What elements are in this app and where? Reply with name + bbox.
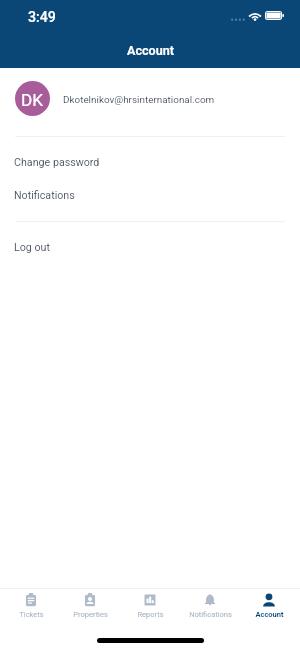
- staticText: Change password: [14, 156, 100, 169]
- staticText: DK: [21, 90, 44, 110]
- button[interactable]: Account: [240, 589, 298, 626]
- staticText: 3:49: [28, 9, 56, 26]
- staticText: Notifications: [189, 610, 232, 619]
- staticText: Properties: [73, 610, 108, 619]
- staticText: Dkotelnikov@hrsinternational.com: [63, 94, 215, 106]
- button[interactable]: Log out: [0, 232, 300, 262]
- button[interactable]: Reports: [121, 589, 179, 626]
- button[interactable]: Notifications: [181, 589, 239, 626]
- staticText: Tickets: [19, 610, 44, 619]
- staticText: Notifications: [14, 189, 75, 202]
- staticText: Log out: [14, 241, 50, 254]
- staticText: Account: [127, 43, 174, 58]
- staticText: Account: [255, 610, 284, 619]
- button[interactable]: Notifications: [0, 180, 300, 210]
- button[interactable]: Change password: [0, 147, 300, 177]
- staticText: Reports: [137, 610, 164, 619]
- button[interactable]: Properties: [61, 589, 119, 626]
- button[interactable]: Tickets: [2, 589, 60, 626]
